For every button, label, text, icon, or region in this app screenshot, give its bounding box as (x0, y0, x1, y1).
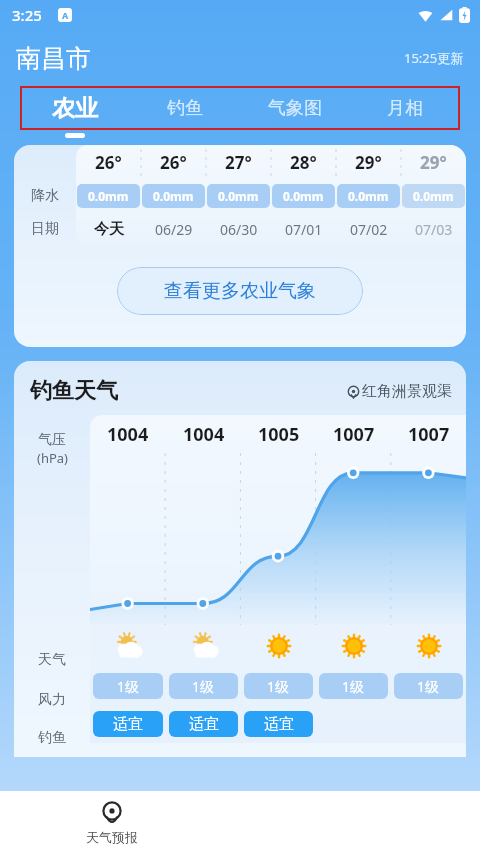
staticText: 天气预报 (86, 829, 138, 845)
staticText: 气压 (38, 431, 66, 449)
button[interactable]: 月相 (350, 86, 460, 130)
button[interactable]: 查看更多农业气象 (117, 267, 363, 315)
staticText: 26° (95, 151, 122, 174)
staticText: 1级 (417, 677, 440, 696)
staticText: (hPa) (37, 449, 68, 467)
staticText: 1级 (117, 677, 140, 696)
staticText: 29° (420, 151, 447, 174)
staticText: 07/02 (350, 220, 388, 239)
button[interactable]: Location (347, 382, 452, 401)
staticText: 27° (225, 151, 252, 174)
staticText: 0.0mm (283, 188, 324, 204)
staticText: 0.0mm (153, 188, 194, 204)
staticText: 0.0mm (413, 188, 454, 204)
button[interactable]: 农业 (20, 86, 130, 130)
staticText: 适宜 (113, 715, 143, 734)
staticText: 07/01 (285, 220, 323, 239)
staticText: 15:25更新 (404, 49, 464, 67)
staticText: A (62, 9, 69, 21)
staticText: 28° (290, 151, 317, 174)
staticText: 3:25 (12, 5, 42, 25)
staticText: 0.0mm (218, 188, 259, 204)
staticText: 1004 (183, 422, 225, 447)
staticText: 查看更多农业气象 (164, 279, 316, 303)
staticText: 日期 (31, 220, 59, 238)
staticText: 降水 (31, 187, 59, 205)
staticText: 29° (355, 151, 382, 174)
staticText: 07/03 (415, 220, 453, 239)
staticText: 1级 (342, 677, 365, 696)
staticText: 天气 (38, 651, 66, 669)
staticText: 今天 (94, 220, 124, 239)
staticText: 0.0mm (88, 188, 129, 204)
staticText: 红角洲景观渠 (362, 382, 452, 401)
staticText: 月相 (387, 97, 423, 120)
staticText: 1007 (333, 422, 375, 447)
staticText: 气象图 (268, 97, 322, 120)
staticText: 1004 (107, 422, 149, 447)
staticText: 1级 (267, 677, 290, 696)
staticText: 1007 (408, 422, 450, 447)
staticText: 1005 (258, 422, 300, 447)
staticText: 钓鱼 (38, 729, 66, 747)
staticText: 26° (160, 151, 187, 174)
staticText: 适宜 (189, 715, 219, 734)
staticText: 钓鱼天气 (30, 377, 118, 405)
staticText: 06/30 (220, 220, 258, 239)
button[interactable]: 天气预报 (86, 800, 138, 845)
staticText: 钓鱼 (167, 97, 203, 120)
staticText: 适宜 (264, 715, 294, 734)
staticText: 1级 (192, 677, 215, 696)
staticText: 南昌市 (16, 43, 91, 74)
button[interactable]: 钓鱼 (130, 86, 240, 130)
staticText: 风力 (38, 691, 66, 709)
staticText: 06/29 (155, 220, 193, 239)
staticText: 0.0mm (348, 188, 389, 204)
staticText: 农业 (52, 94, 98, 123)
button[interactable]: 气象图 (240, 86, 350, 130)
